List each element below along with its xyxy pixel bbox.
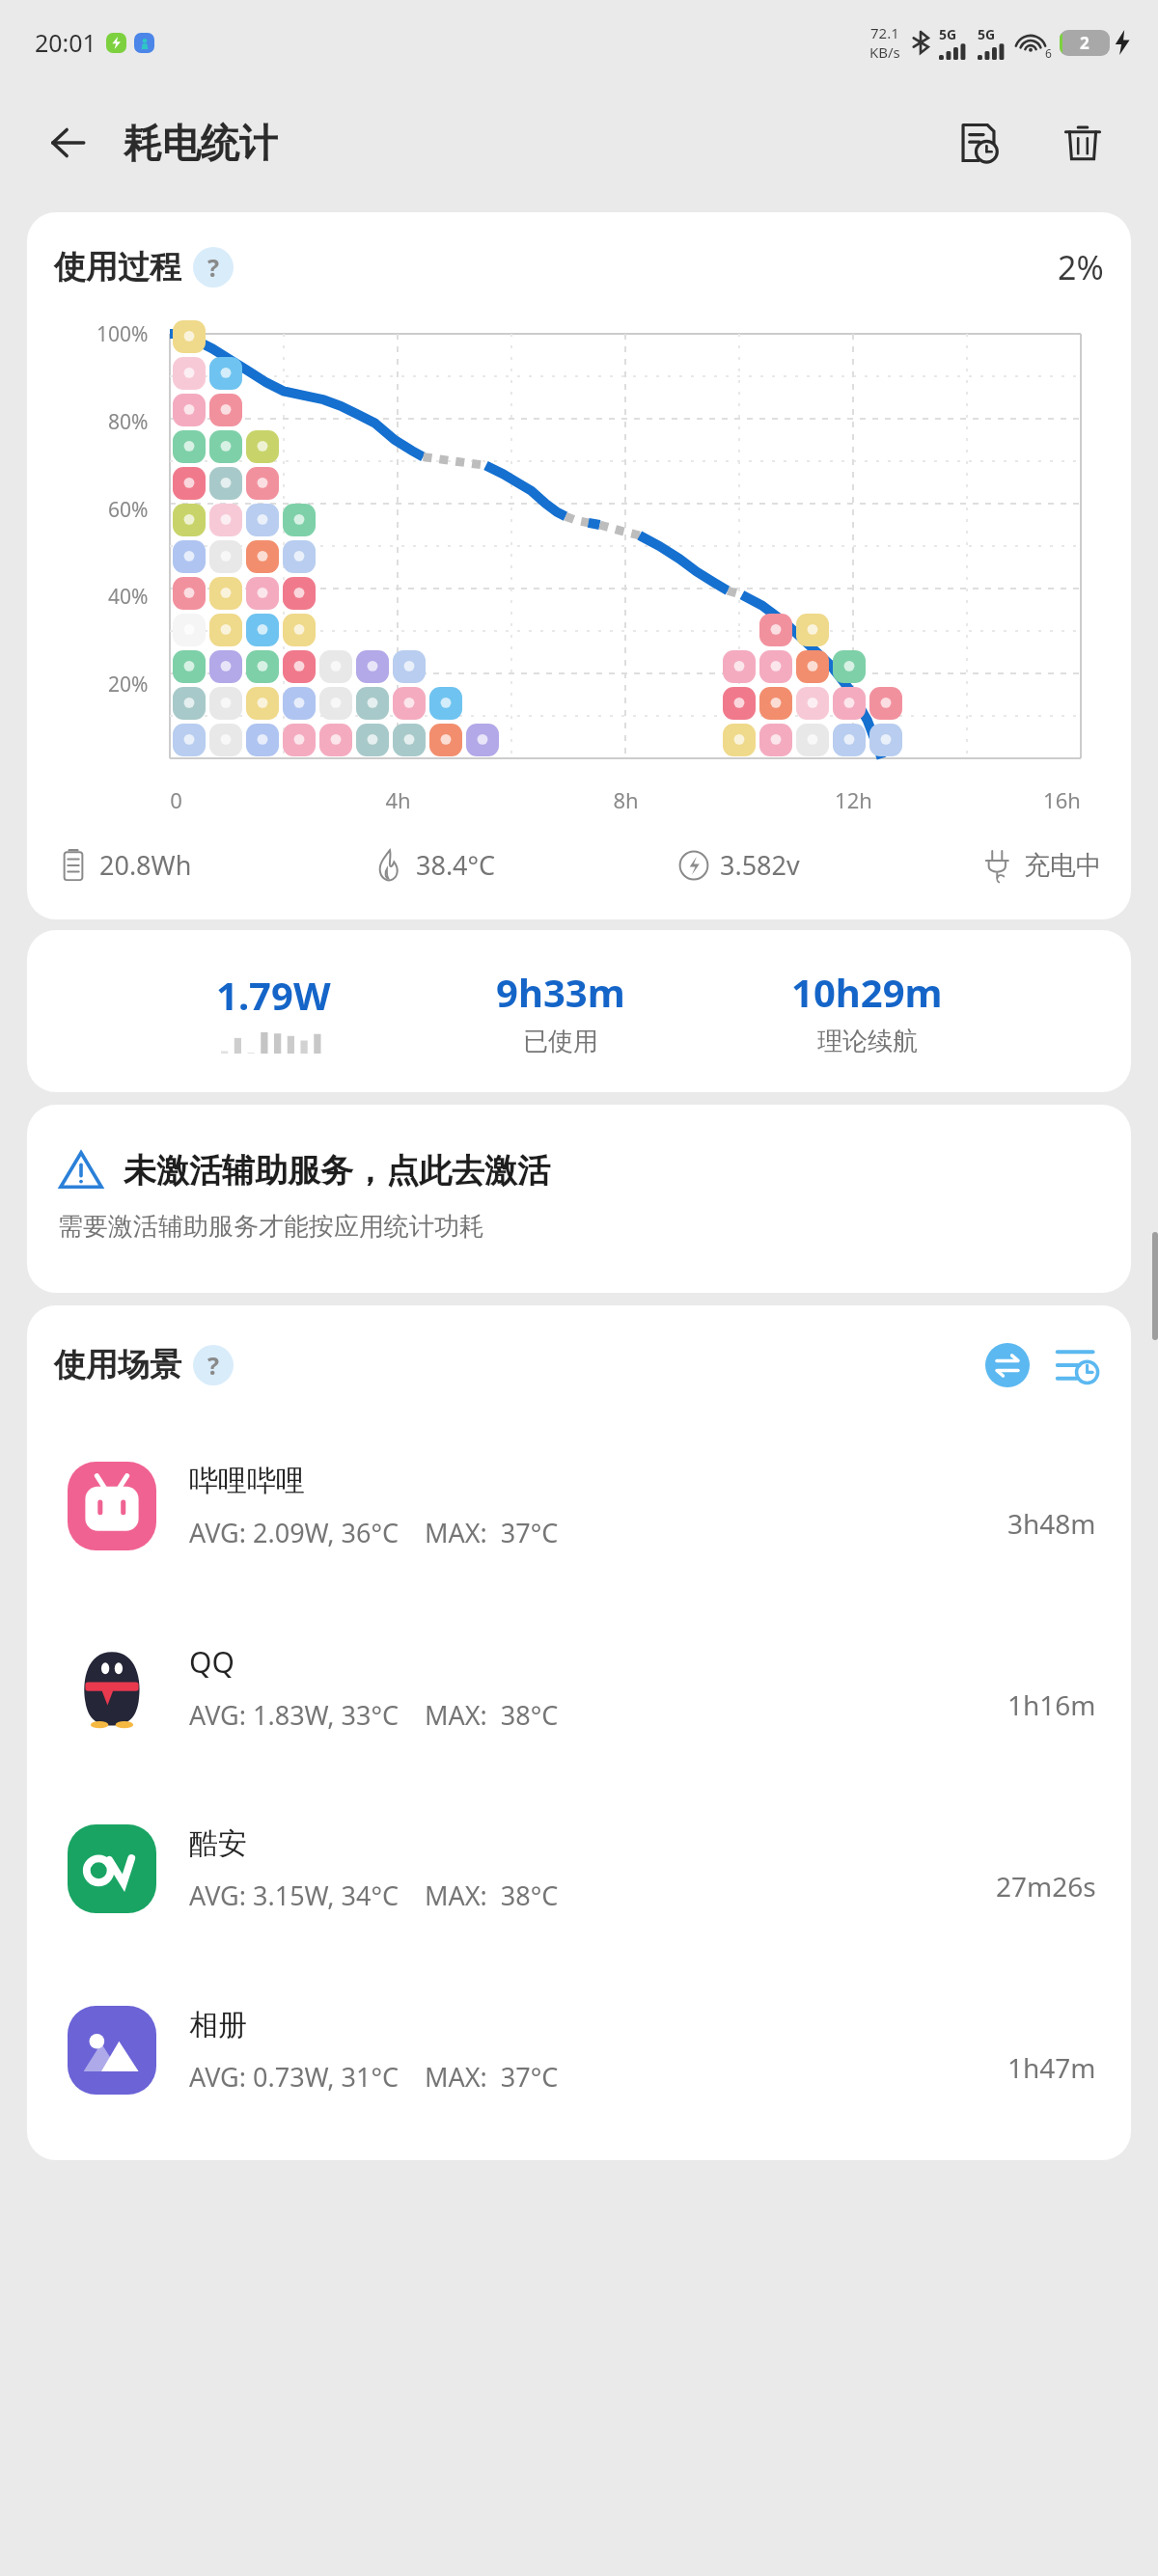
staticText: 20% [108, 671, 149, 699]
button[interactable]: 使用过程 [27, 212, 1131, 919]
staticText: 1h47m [1007, 2049, 1096, 2086]
staticText: MAX: 38°C [425, 1877, 559, 1913]
staticText: 使用场景 [54, 1345, 181, 1385]
staticText: ? [207, 251, 219, 284]
button[interactable]: 哔哩哔哩 [27, 1415, 1131, 1597]
staticText: 使用过程 [54, 247, 181, 288]
staticText: MAX: 37°C [425, 2059, 559, 2095]
staticText: 5G [978, 25, 996, 43]
button[interactable]: Switch view [980, 1338, 1034, 1392]
staticText: MAX: 38°C [425, 1697, 559, 1733]
staticText: 相册 [189, 2007, 247, 2043]
button[interactable]: 相册 [27, 1959, 1131, 2141]
button[interactable]: QQ [27, 1597, 1131, 1778]
staticText: 12h [835, 785, 872, 814]
staticText: 未激活辅助服务，点此去激活 [124, 1150, 550, 1192]
staticText: KB/s [869, 42, 900, 62]
button[interactable]: 未激活辅助服务，点此去激活 [27, 1105, 1131, 1293]
staticText: AVG: 3.15W, 34°C [189, 1877, 400, 1913]
button[interactable]: Help [193, 1345, 234, 1385]
staticText: 1.79W [216, 969, 331, 1021]
button[interactable]: Back [39, 114, 96, 172]
button[interactable]: Sort by time [1050, 1338, 1104, 1392]
staticText: 40% [108, 583, 149, 611]
staticText: 5G [939, 25, 957, 43]
staticText: 72.1 [870, 23, 899, 42]
staticText: MAX: 37°C [425, 1515, 559, 1550]
button[interactable]: History [944, 108, 1013, 178]
staticText: QQ [189, 1642, 234, 1682]
staticText: 27m26s [996, 1868, 1096, 1905]
staticText: 耗电统计 [124, 119, 278, 167]
staticText: 20:01 [35, 26, 96, 59]
button[interactable]: 酷安 [27, 1778, 1131, 1959]
staticText: 哔哩哔哩 [189, 1463, 305, 1499]
button[interactable]: Delete [1048, 108, 1117, 178]
staticText: 理论续航 [817, 1026, 918, 1057]
staticText: 4h [385, 785, 411, 814]
staticText: 8h [613, 785, 639, 814]
staticText: AVG: 1.83W, 33°C [189, 1697, 400, 1733]
staticText: 酷安 [189, 1825, 247, 1862]
staticText: 3.582v [720, 847, 800, 883]
button[interactable]: Help [193, 247, 234, 288]
staticText: 60% [108, 496, 149, 524]
staticText: 16h [1043, 785, 1081, 814]
staticText: 2 [1080, 32, 1089, 54]
staticText: 2% [1058, 245, 1104, 289]
staticText: 100% [96, 320, 149, 348]
staticText: ? [207, 1349, 219, 1382]
staticText: 9h33m [496, 966, 625, 1018]
staticText: AVG: 2.09W, 36°C [189, 1515, 400, 1550]
staticText: 20.8Wh [99, 847, 192, 883]
staticText: 6 [1045, 45, 1052, 61]
staticText: 需要激活辅助服务才能按应用统计功耗 [58, 1211, 484, 1243]
button[interactable]: 1.79W [27, 930, 1131, 1092]
staticText: 充电中 [1024, 849, 1102, 882]
staticText: 80% [108, 408, 149, 436]
staticText: 38.4°C [416, 847, 496, 883]
staticText: 0 [170, 785, 182, 814]
staticText: 已使用 [523, 1026, 598, 1057]
staticText: 1h16m [1007, 1686, 1096, 1723]
staticText: AVG: 0.73W, 31°C [189, 2059, 400, 2095]
staticText: 10h29m [791, 966, 943, 1018]
staticText: 3h48m [1007, 1505, 1096, 1542]
